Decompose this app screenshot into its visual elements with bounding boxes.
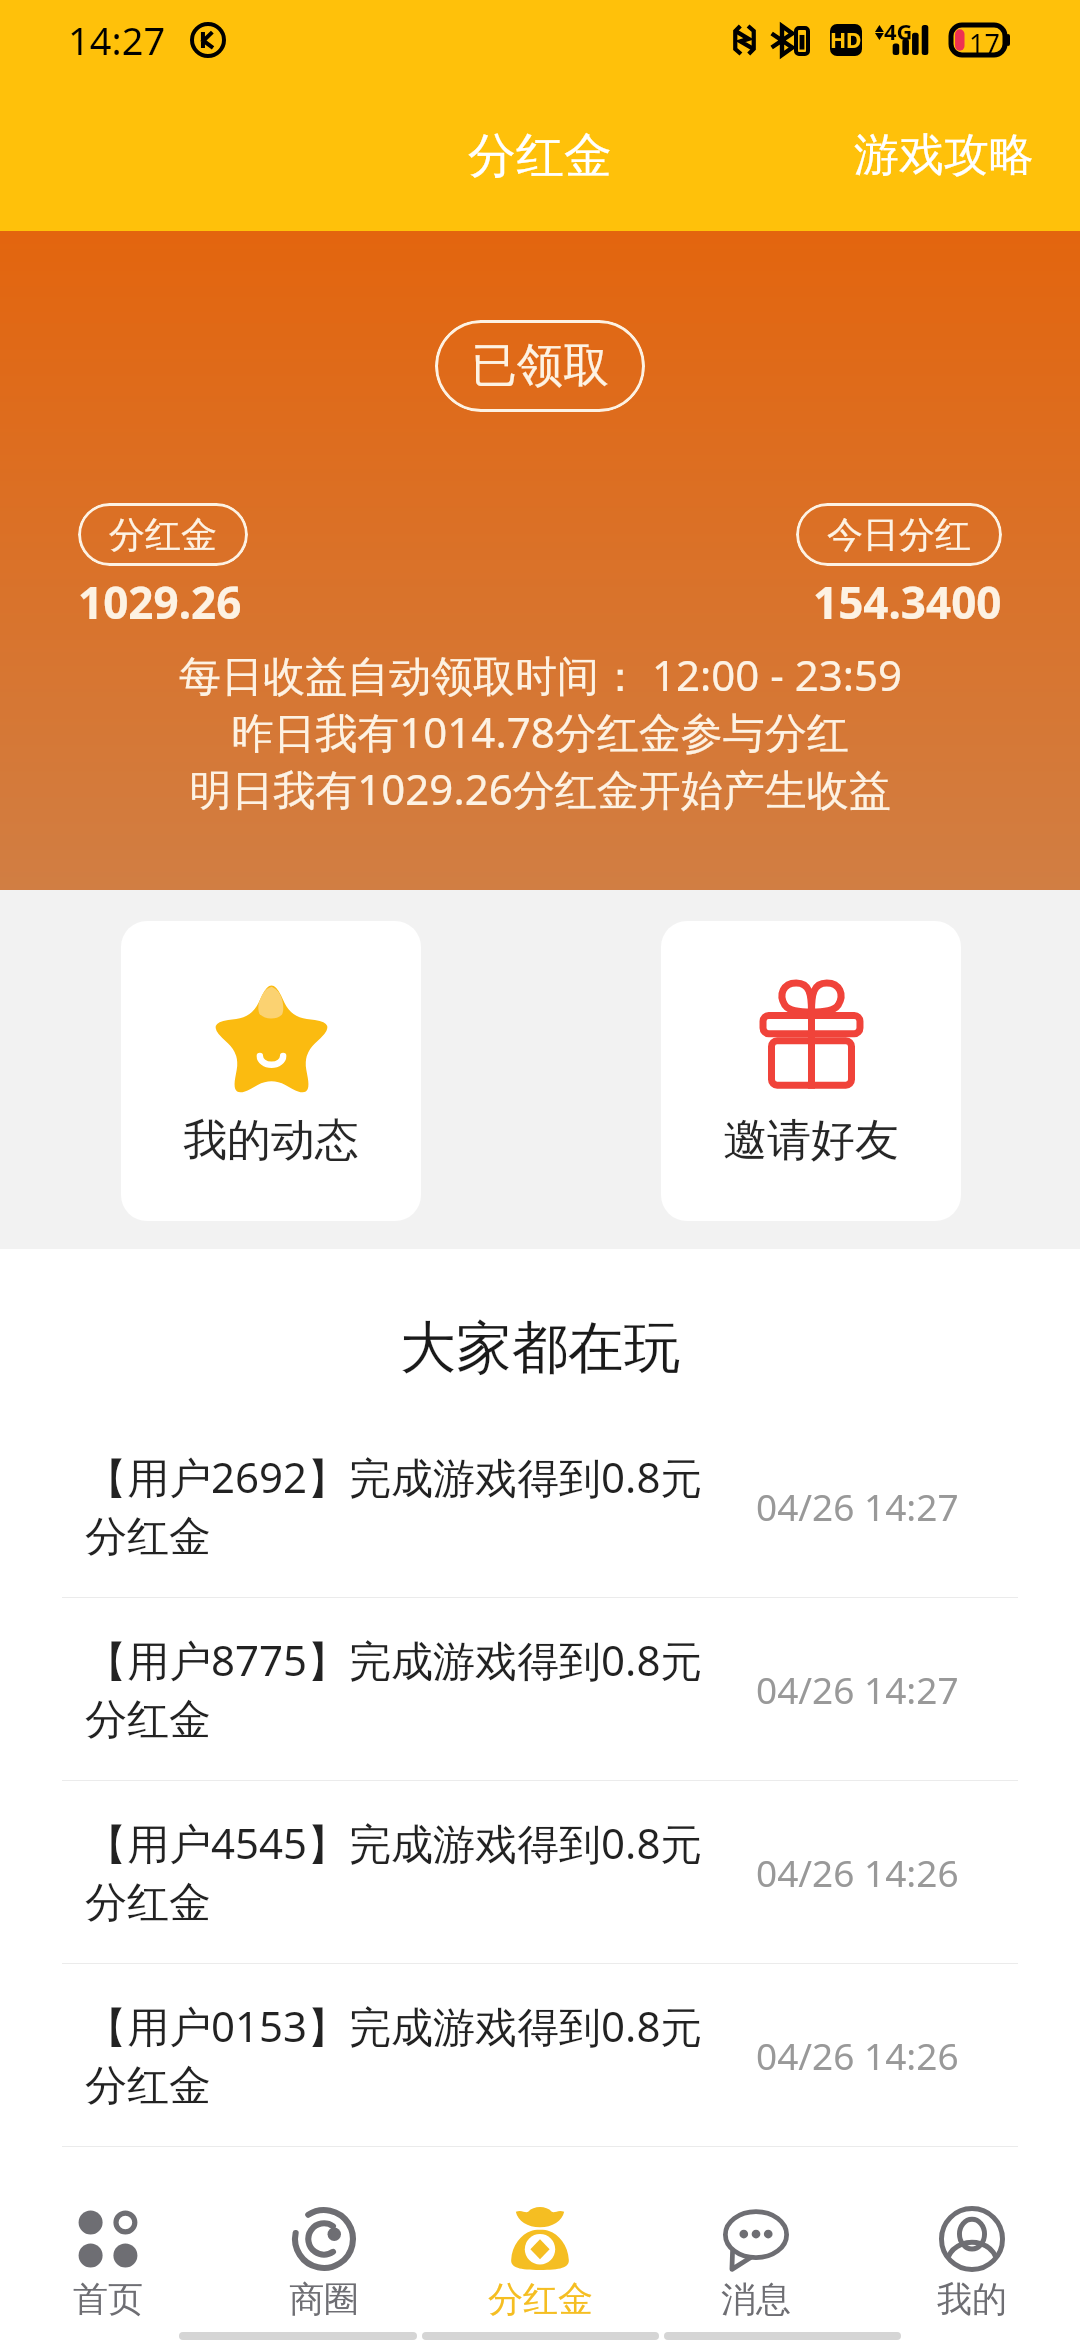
staticText: 1029.26 bbox=[78, 572, 242, 632]
staticText: HD bbox=[830, 26, 862, 55]
staticText: 商圈 bbox=[289, 2277, 359, 2321]
button[interactable]: 分红金 bbox=[432, 2185, 648, 2321]
button[interactable]: 【用户2692】完成游戏得到0.8元分红金 bbox=[0, 1415, 1080, 1598]
staticText: 昨日我有1014.78分红金参与分红 bbox=[231, 703, 849, 760]
staticText: 【用户8775】完成游戏得到0.8元分红金 bbox=[85, 1631, 710, 1747]
staticText: 04/26 14:26 bbox=[756, 2030, 959, 2080]
staticText: 【用户2692】完成游戏得到0.8元分红金 bbox=[85, 1448, 710, 1564]
staticText: 消息 bbox=[721, 2277, 791, 2321]
staticText: 04/26 14:27 bbox=[756, 1481, 959, 1531]
button[interactable]: 我的 bbox=[864, 2185, 1080, 2321]
staticText: 154.3400 bbox=[813, 572, 1002, 632]
button[interactable]: 邀请好友 bbox=[661, 921, 961, 1221]
staticText: 我的 bbox=[937, 2277, 1007, 2321]
staticText: 分红金 bbox=[109, 512, 217, 557]
staticText: 今日分红 bbox=[827, 512, 971, 557]
staticText: 17 bbox=[969, 25, 1000, 55]
staticText: 分红金 bbox=[468, 126, 612, 186]
button[interactable]: 我的动态 bbox=[121, 921, 421, 1221]
button[interactable]: 首页 bbox=[0, 2185, 216, 2321]
staticText: 分红金 bbox=[488, 2277, 593, 2321]
button[interactable]: 消息 bbox=[648, 2185, 864, 2321]
button[interactable]: 已领取 bbox=[435, 320, 645, 412]
button[interactable]: 【用户8775】完成游戏得到0.8元分红金 bbox=[0, 1598, 1080, 1781]
staticText: 首页 bbox=[73, 2277, 143, 2321]
staticText: 每日收益自动领取时间： 12:00 - 23:59 bbox=[179, 646, 902, 703]
staticText: 4G bbox=[884, 16, 913, 46]
staticText: 明日我有1029.26分红金开始产生收益 bbox=[189, 760, 891, 817]
button[interactable]: 游戏攻略 bbox=[854, 127, 1080, 184]
button[interactable]: 【用户4545】完成游戏得到0.8元分红金 bbox=[0, 1781, 1080, 1964]
staticText: 04/26 14:26 bbox=[756, 1847, 959, 1897]
staticText: 14:27 bbox=[68, 14, 166, 66]
staticText: 04/26 14:27 bbox=[756, 1664, 959, 1714]
staticText: 【用户0153】完成游戏得到0.8元分红金 bbox=[85, 1997, 710, 2113]
staticText: 已领取 bbox=[471, 337, 609, 395]
staticText: 我的动态 bbox=[183, 1113, 359, 1168]
staticText: 大家都在玩 bbox=[400, 1313, 680, 1384]
staticText: 【用户4545】完成游戏得到0.8元分红金 bbox=[85, 1814, 710, 1930]
staticText: 邀请好友 bbox=[723, 1113, 899, 1168]
button[interactable]: 商圈 bbox=[216, 2185, 432, 2321]
button[interactable]: 【用户0153】完成游戏得到0.8元分红金 bbox=[0, 1964, 1080, 2147]
